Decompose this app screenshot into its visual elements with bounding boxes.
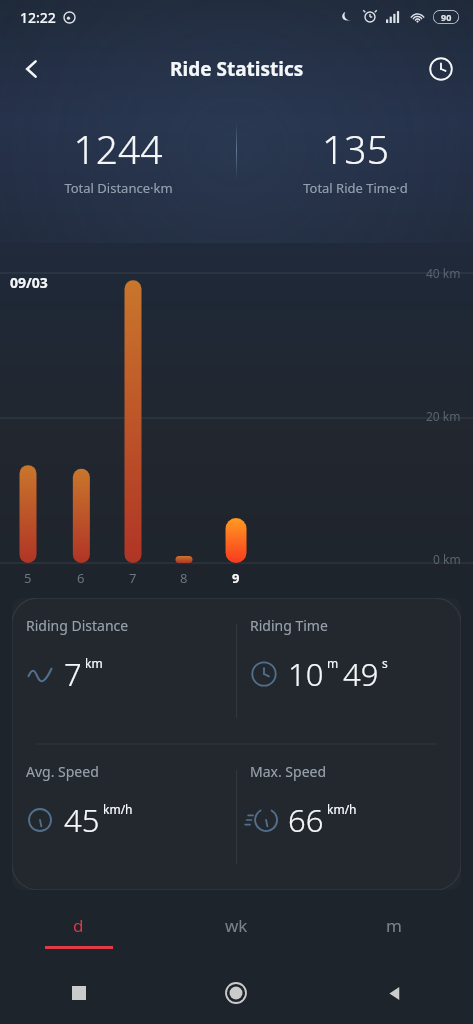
button[interactable]: Home — [157, 962, 315, 1024]
button[interactable]: Riding Time — [236, 598, 461, 744]
staticText: 1244 — [73, 122, 163, 175]
button[interactable]: d — [0, 900, 157, 962]
button[interactable]: wk — [157, 900, 315, 962]
staticText: 40 km — [426, 265, 461, 281]
staticText: km/h — [103, 801, 133, 817]
staticText: 49 — [343, 653, 379, 695]
button[interactable]: Max. Speed — [236, 744, 461, 890]
staticText: Total Distance·km — [64, 179, 173, 197]
staticText: km/h — [327, 801, 357, 817]
staticText: 6 — [77, 569, 85, 587]
button[interactable]: Riding Distance — [12, 598, 236, 744]
staticText: wk — [225, 914, 248, 937]
staticText: 20 km — [426, 408, 461, 424]
staticText: 90 — [441, 11, 452, 23]
button[interactable]: m — [315, 900, 473, 962]
staticText: 10 — [288, 653, 324, 695]
staticText: m — [386, 914, 402, 937]
button[interactable]: History — [419, 52, 463, 86]
staticText: Riding Distance — [26, 616, 129, 635]
staticText: Max. Speed — [250, 762, 327, 781]
staticText: Avg. Speed — [26, 762, 99, 781]
staticText: 135 — [322, 122, 389, 175]
staticText: 12:22 — [20, 8, 56, 27]
staticText: 5 — [24, 569, 32, 587]
button[interactable]: Back — [315, 962, 473, 1024]
staticText: 7 — [64, 653, 82, 695]
staticText: Ride Statistics — [170, 56, 304, 82]
staticText: km — [85, 655, 103, 671]
staticText: 8 — [180, 569, 188, 587]
staticText: 09/03 — [10, 273, 48, 292]
staticText: 9 — [232, 569, 240, 587]
button[interactable]: Avg. Speed — [12, 744, 236, 890]
staticText: Total Ride Time·d — [303, 179, 408, 197]
staticText: m — [327, 655, 339, 671]
button[interactable]: Back — [10, 52, 54, 86]
staticText: s — [382, 655, 388, 671]
staticText: 0 km — [433, 551, 461, 567]
button[interactable]: Recents — [0, 962, 157, 1024]
staticText: d — [73, 914, 84, 937]
staticText: 66 — [288, 799, 324, 841]
staticText: 7 — [129, 569, 137, 587]
staticText: Riding Time — [250, 616, 328, 635]
staticText: 45 — [64, 799, 100, 841]
